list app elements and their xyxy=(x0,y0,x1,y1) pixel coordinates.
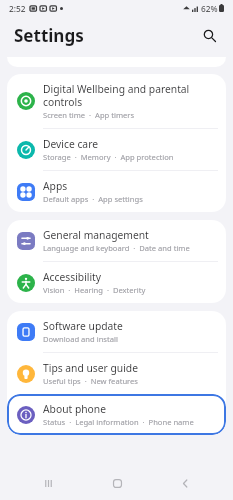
staticText: Storage · Memory · App protection xyxy=(43,152,174,162)
button[interactable]: General management xyxy=(7,220,226,261)
staticText: 2:52 xyxy=(9,3,26,14)
staticText: Status · Legal information · Phone name xyxy=(43,417,194,427)
button[interactable]: Digital Wellbeing and parental controls xyxy=(7,74,226,128)
staticText: Download and install xyxy=(43,334,118,344)
staticText: 62% xyxy=(201,3,218,14)
button[interactable]: Home xyxy=(97,466,137,500)
button[interactable]: Tips and user guide xyxy=(7,353,226,394)
staticText: Language and keyboard · Date and time xyxy=(43,243,190,253)
staticText: Digital Wellbeing and parental controls xyxy=(43,82,190,109)
staticText: Tips and user guide xyxy=(43,361,138,375)
staticText: Screen time · App timers xyxy=(43,110,135,120)
button[interactable]: Software update xyxy=(7,311,226,352)
button[interactable]: Search xyxy=(197,23,221,47)
staticText: Settings xyxy=(14,24,84,47)
button[interactable]: Recents xyxy=(28,466,68,500)
staticText: Device care xyxy=(43,137,99,151)
staticText: Default apps · App settings xyxy=(43,194,143,204)
staticText: Useful tips · New features xyxy=(43,376,138,386)
button[interactable]: Accessibility xyxy=(7,262,226,303)
button[interactable]: Apps xyxy=(7,171,226,212)
button[interactable]: Device care xyxy=(7,129,226,170)
staticText: About phone xyxy=(43,402,106,416)
button[interactable]: Back xyxy=(165,466,205,500)
staticText: Vision · Hearing · Dexterity xyxy=(43,285,146,295)
staticText: General management xyxy=(43,228,149,242)
staticText: Apps xyxy=(43,179,68,193)
staticText: Software update xyxy=(43,319,123,333)
button[interactable]: About phone xyxy=(7,394,226,435)
staticText: Accessibility xyxy=(43,270,102,284)
